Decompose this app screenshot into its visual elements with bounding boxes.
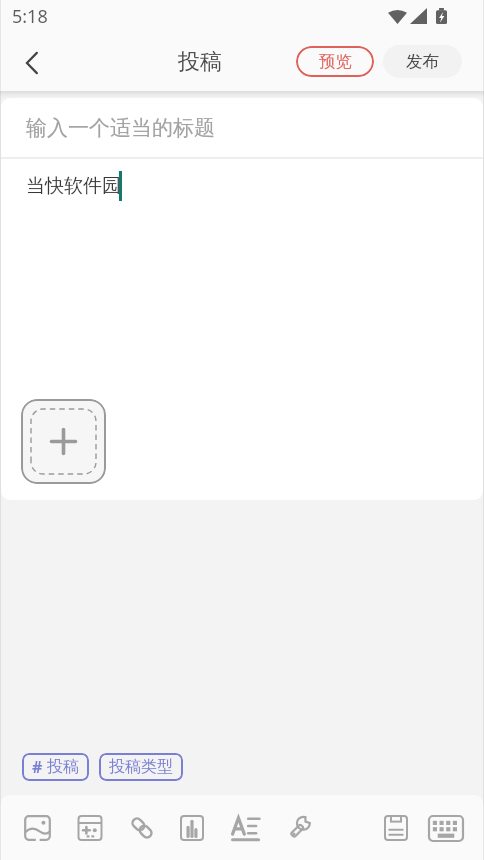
button[interactable]: Tools xyxy=(275,803,325,853)
staticText: 5:18 xyxy=(12,4,48,29)
staticText: 当快软件园 xyxy=(26,174,121,198)
staticText: 投稿 xyxy=(178,48,222,76)
button[interactable]: Back xyxy=(8,39,56,87)
staticText: # xyxy=(32,756,43,778)
button[interactable]: 投稿类型 xyxy=(99,753,183,781)
button[interactable]: Keyboard xyxy=(421,803,471,853)
button[interactable]: Text format xyxy=(221,803,271,853)
button[interactable]: 发布 xyxy=(383,45,462,78)
button[interactable]: Save draft xyxy=(371,803,421,853)
button[interactable]: Insert image xyxy=(12,803,62,853)
staticText: 预览 xyxy=(319,51,352,72)
button[interactable]: Insert link xyxy=(117,803,167,853)
staticText: 发布 xyxy=(406,51,439,72)
button[interactable]: Insert card xyxy=(65,803,115,853)
staticText: 投稿类型 xyxy=(109,757,173,777)
staticText: 投稿 xyxy=(47,757,79,777)
button[interactable]: Add image xyxy=(21,399,106,484)
button[interactable]: # xyxy=(22,753,89,781)
button[interactable]: Insert chart xyxy=(167,803,217,853)
staticText: 输入一个适当的标题 xyxy=(26,115,215,141)
button[interactable]: 预览 xyxy=(296,46,374,77)
